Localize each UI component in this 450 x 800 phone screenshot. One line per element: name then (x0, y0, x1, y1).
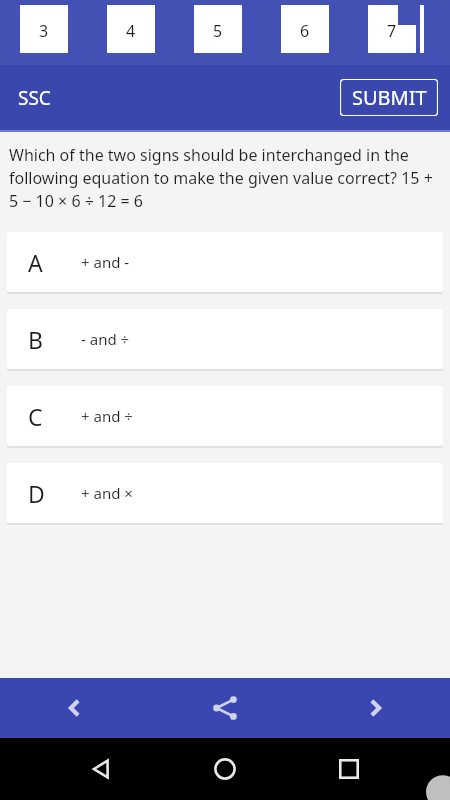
button[interactable]: A (7, 232, 443, 292)
staticText: + and - (81, 252, 130, 272)
button[interactable]: Previous question (45, 678, 105, 738)
button[interactable]: 5 (194, 5, 242, 53)
button[interactable]: Home (202, 746, 248, 792)
button[interactable]: 7 (368, 5, 416, 53)
button[interactable]: Recent apps (326, 746, 372, 792)
button[interactable]: D (7, 463, 443, 523)
button[interactable]: Share (195, 678, 255, 738)
staticText: Which of the two signs should be interch… (9, 144, 436, 212)
staticText: SUBMIT (352, 84, 427, 111)
staticText: A (28, 247, 43, 278)
staticText: 6 (300, 20, 310, 42)
staticText: SSC (18, 85, 51, 111)
staticText: 4 (126, 20, 136, 42)
staticText: B (28, 324, 43, 355)
button[interactable]: B (7, 309, 443, 369)
staticText: 3 (39, 20, 49, 42)
button[interactable]: SUBMIT (340, 79, 438, 116)
button[interactable]: Back (78, 746, 124, 792)
button[interactable]: C (7, 386, 443, 446)
button[interactable]: 6 (281, 5, 329, 53)
staticText: + and ÷ (81, 406, 133, 426)
button[interactable]: Next question (345, 678, 405, 738)
staticText: - and ÷ (81, 329, 130, 349)
staticText: D (28, 478, 45, 509)
staticText: + and × (81, 483, 133, 503)
button[interactable]: 3 (20, 5, 68, 53)
staticText: C (28, 401, 43, 432)
button[interactable]: 4 (107, 5, 155, 53)
staticText: 7 (387, 20, 397, 42)
staticText: 5 (213, 20, 223, 42)
